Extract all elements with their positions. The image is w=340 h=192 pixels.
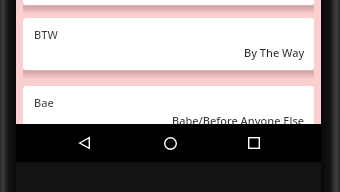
staticText: By The Way — [244, 45, 305, 60]
button[interactable]: Home — [148, 124, 192, 162]
button[interactable]: Bae — [23, 86, 314, 138]
staticText: Babe/Before Anyone Else — [172, 113, 305, 128]
button[interactable]: Recent apps — [232, 124, 276, 162]
staticText: Bae — [34, 95, 54, 110]
staticText: BTW — [34, 27, 58, 42]
button[interactable]: BTW — [23, 18, 314, 70]
button[interactable]: Back — [62, 124, 106, 162]
